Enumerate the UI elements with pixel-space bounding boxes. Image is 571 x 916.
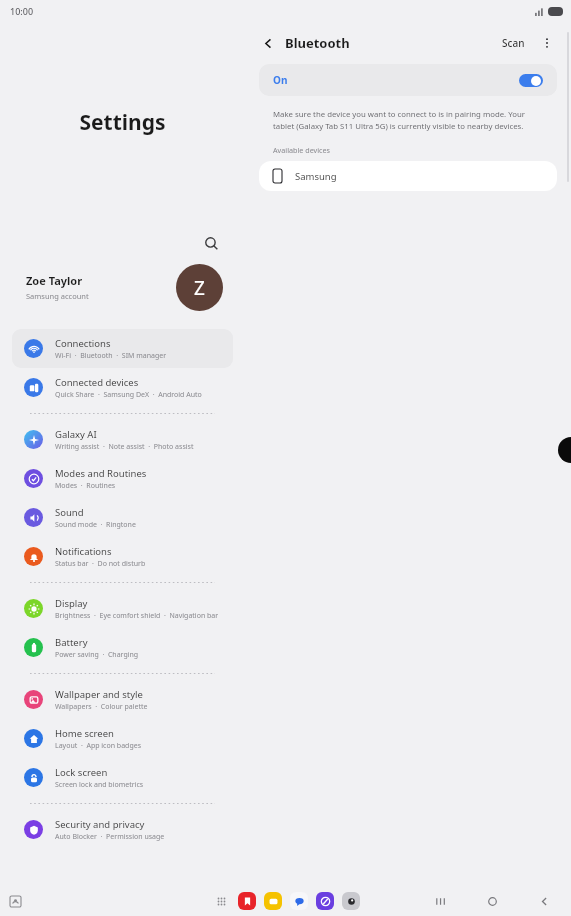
button[interactable]: Battery xyxy=(12,628,233,667)
staticText: Auto Blocker · Permission usage xyxy=(55,832,165,842)
staticText: On xyxy=(273,73,288,87)
button[interactable]: All apps xyxy=(212,892,230,910)
staticText: Settings xyxy=(0,108,245,137)
staticText: Zoe Taylor xyxy=(26,273,83,288)
staticText: Samsung account xyxy=(26,291,89,301)
button[interactable]: More options xyxy=(537,33,557,53)
button[interactable]: Wallpaper and style xyxy=(12,680,233,719)
button[interactable]: Samsung xyxy=(259,161,557,191)
button[interactable]: Connected devices xyxy=(12,368,233,407)
staticText: 10:00 xyxy=(10,5,34,17)
staticText: Available devices xyxy=(273,145,330,155)
button[interactable]: Internet xyxy=(316,892,334,910)
button[interactable]: Connections xyxy=(12,329,233,368)
button[interactable]: Sound xyxy=(12,498,233,537)
button[interactable]: Notifications xyxy=(12,537,233,576)
staticText: Make sure the device you want to connect… xyxy=(273,109,543,132)
staticText: Wallpapers · Colour palette xyxy=(55,702,148,712)
button[interactable]: Home xyxy=(481,890,503,912)
staticText: Status bar · Do not disturb xyxy=(55,559,146,569)
button[interactable]: Lock screen xyxy=(12,758,233,797)
staticText: Connections xyxy=(55,337,111,350)
button[interactable]: Recents xyxy=(429,890,451,912)
staticText: Samsung xyxy=(295,170,337,183)
staticText: Modes · Routines xyxy=(55,481,116,491)
button[interactable]: Home screen xyxy=(12,719,233,758)
button[interactable]: Samsung Notes xyxy=(238,892,256,910)
button[interactable]: Back xyxy=(257,32,279,54)
button[interactable]: Display xyxy=(12,589,233,628)
button[interactable]: On xyxy=(259,64,557,96)
staticText: Writing assist · Note assist · Photo ass… xyxy=(55,442,194,452)
button[interactable]: My Files xyxy=(264,892,282,910)
staticText: Layout · App icon badges xyxy=(55,741,142,751)
staticText: Home screen xyxy=(55,727,114,740)
staticText: Sound xyxy=(55,506,84,519)
staticText: Bluetooth xyxy=(285,34,350,52)
button[interactable]: Security and privacy xyxy=(12,810,233,849)
button[interactable]: Search xyxy=(199,231,223,255)
button[interactable]: Galaxy AI xyxy=(12,420,233,459)
staticText: Power saving · Charging xyxy=(55,650,139,660)
button[interactable]: Modes and Routines xyxy=(12,459,233,498)
staticText: Battery xyxy=(55,636,88,649)
staticText: Modes and Routines xyxy=(55,467,147,480)
staticText: Connected devices xyxy=(55,376,139,389)
staticText: Notifications xyxy=(55,545,112,558)
staticText: Z xyxy=(194,275,205,301)
staticText: Quick Share · Samsung DeX · Android Auto xyxy=(55,390,202,400)
staticText: Screen lock and biometrics xyxy=(55,780,144,790)
button[interactable]: Back xyxy=(533,890,555,912)
button[interactable]: Taskbar apps xyxy=(5,891,25,911)
staticText: Lock screen xyxy=(55,766,108,779)
button[interactable]: Scan xyxy=(498,32,529,54)
staticText: Scan xyxy=(502,36,525,50)
staticText: Security and privacy xyxy=(55,818,145,831)
button[interactable]: Zoe Taylor xyxy=(0,257,245,317)
staticText: Display xyxy=(55,597,88,610)
staticText: Wi-Fi · Bluetooth · SIM manager xyxy=(55,351,167,361)
button[interactable]: Camera xyxy=(342,892,360,910)
staticText: Galaxy AI xyxy=(55,428,97,441)
button[interactable]: Messages xyxy=(290,892,308,910)
staticText: Sound mode · Ringtone xyxy=(55,520,136,530)
staticText: Brightness · Eye comfort shield · Naviga… xyxy=(55,611,219,621)
staticText: Wallpaper and style xyxy=(55,688,143,701)
